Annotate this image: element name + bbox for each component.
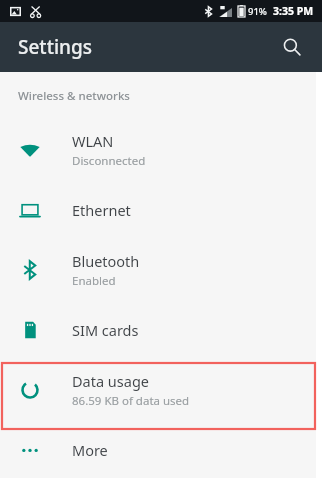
staticText: 86.59 KB of data used [72,393,190,409]
staticText: SIM cards [72,320,139,340]
button[interactable]: SIM cards [0,300,322,360]
staticText: 3:35 PM [273,4,314,18]
button[interactable]: Ethernet [0,180,322,240]
button[interactable]: WLAN [0,120,322,180]
staticText: 91% [248,5,267,18]
button[interactable]: More [0,420,322,480]
staticText: Wireless & networks [18,88,130,104]
button[interactable]: Data usage [0,360,322,420]
staticText: More [72,440,108,460]
staticText: Enabled [72,273,116,289]
staticText: Disconnected [72,153,146,169]
staticText: Ethernet [72,200,131,220]
staticText: Data usage [72,371,149,391]
button[interactable]: Search [272,27,312,67]
button[interactable]: Bluetooth [0,240,322,300]
staticText: Settings [18,34,92,60]
staticText: WLAN [72,131,114,151]
staticText: Bluetooth [72,251,140,271]
